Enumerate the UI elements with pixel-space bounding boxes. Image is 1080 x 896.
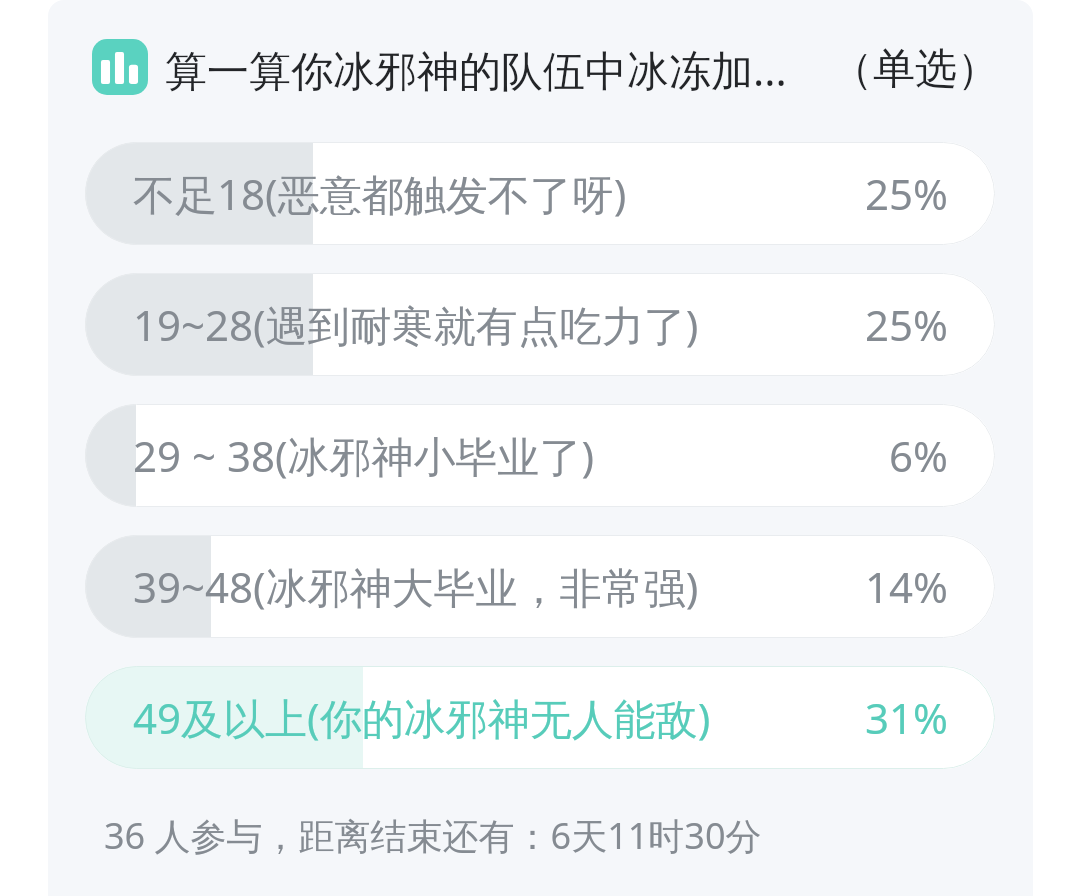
staticText: 6% bbox=[889, 427, 948, 484]
staticText: 不足18(恶意都触发不了呀) bbox=[133, 165, 627, 222]
staticText: 31% bbox=[865, 689, 948, 746]
staticText: 36 人参与，距离结束还有：6天11时30分 bbox=[104, 811, 762, 860]
staticText: 19~28(遇到耐寒就有点吃力了) bbox=[133, 296, 699, 353]
staticText: 49及以上(你的冰邪神无人能敌) bbox=[133, 689, 711, 746]
staticText: 25% bbox=[865, 165, 948, 222]
button[interactable]: 39~48(冰邪神大毕业，非常强) bbox=[85, 535, 995, 638]
staticText: 39~48(冰邪神大毕业，非常强) bbox=[133, 558, 699, 615]
staticText: 14% bbox=[865, 558, 948, 615]
staticText: 25% bbox=[865, 296, 948, 353]
staticText: 算一算你冰邪神的队伍中冰冻加... bbox=[165, 41, 787, 98]
button[interactable]: 49及以上(你的冰邪神无人能敌) bbox=[85, 666, 995, 769]
button[interactable]: 不足18(恶意都触发不了呀) bbox=[85, 142, 995, 245]
other: Poll bbox=[92, 39, 148, 95]
staticText: （单选） bbox=[831, 43, 999, 96]
button[interactable]: 19~28(遇到耐寒就有点吃力了) bbox=[85, 273, 995, 376]
button[interactable]: 29 ~ 38(冰邪神小毕业了) bbox=[85, 404, 995, 507]
staticText: 29 ~ 38(冰邪神小毕业了) bbox=[133, 427, 595, 484]
